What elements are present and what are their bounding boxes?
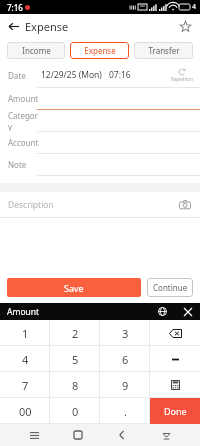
staticText: Continue	[153, 282, 188, 293]
button[interactable]: Category	[0, 110, 200, 132]
button[interactable]: Calculator	[150, 372, 200, 398]
staticText: Account	[8, 137, 41, 148]
button[interactable]: Date	[0, 63, 200, 87]
staticText: 3	[122, 326, 129, 341]
staticText: 1	[22, 326, 29, 341]
staticText: 2	[72, 326, 79, 341]
button[interactable]: Save	[7, 278, 141, 297]
button[interactable]: Menu	[24, 425, 44, 445]
staticText: 6	[122, 352, 129, 367]
button[interactable]: 1	[0, 320, 50, 346]
staticText: Expense	[84, 45, 116, 56]
staticText: 4	[192, 2, 197, 12]
button[interactable]: 00	[0, 398, 50, 424]
button[interactable]: Account	[0, 132, 200, 154]
staticText: 12/29/25 (Mon)	[41, 69, 102, 81]
staticText: Save	[64, 282, 84, 294]
button[interactable]: Minus	[150, 346, 200, 372]
button[interactable]: .	[100, 398, 150, 424]
staticText: Amount	[7, 306, 40, 318]
button[interactable]: Done	[150, 398, 200, 424]
staticText: Amount	[8, 93, 41, 104]
staticText: 00	[19, 404, 32, 419]
button[interactable]: 0	[50, 398, 100, 424]
staticText: 8	[72, 378, 79, 393]
button[interactable]: Home	[68, 425, 88, 445]
button[interactable]: Transfer	[134, 42, 193, 59]
button[interactable]: 8	[50, 372, 100, 398]
button[interactable]: Description	[0, 192, 200, 217]
staticText: Income	[22, 45, 51, 56]
button[interactable]: Back	[112, 425, 132, 445]
staticText: .	[124, 404, 127, 419]
staticText: Done	[164, 405, 187, 417]
staticText: 4	[22, 352, 29, 367]
button[interactable]: Change language	[156, 305, 169, 318]
staticText: 0	[72, 404, 79, 419]
staticText: Note	[8, 159, 41, 170]
staticText: 5	[72, 352, 79, 367]
button[interactable]: 9	[100, 372, 150, 398]
button[interactable]: Add photo	[178, 198, 192, 212]
staticText: Transfer	[148, 45, 180, 56]
staticText: Expense	[25, 19, 69, 34]
staticText: 9	[122, 378, 129, 393]
button[interactable]: Income	[7, 42, 65, 59]
staticText: Category	[8, 110, 41, 131]
button[interactable]: Close keyboard	[181, 305, 194, 318]
button[interactable]: 3	[100, 320, 150, 346]
staticText: 07:16	[109, 69, 131, 81]
button[interactable]: 5	[50, 346, 100, 372]
button[interactable]: 7	[0, 372, 50, 398]
button[interactable]: Back	[3, 16, 23, 36]
button[interactable]: Favorite	[175, 16, 195, 36]
button[interactable]: Hide keyboard	[156, 425, 176, 445]
button[interactable]: Continue	[147, 278, 193, 297]
staticText: 7	[22, 378, 29, 393]
button[interactable]: Amount	[0, 88, 200, 110]
staticText: Date	[8, 70, 41, 81]
button[interactable]: Repetition	[171, 68, 193, 82]
staticText: Description	[8, 199, 54, 211]
staticText: 7:16	[7, 2, 23, 13]
button[interactable]: 6	[100, 346, 150, 372]
button[interactable]: 2	[50, 320, 100, 346]
staticText: Repetition	[171, 76, 193, 82]
button[interactable]: Backspace	[150, 320, 200, 346]
button[interactable]: 4	[0, 346, 50, 372]
button[interactable]: Expense	[70, 42, 129, 59]
button[interactable]: Note	[0, 154, 200, 176]
